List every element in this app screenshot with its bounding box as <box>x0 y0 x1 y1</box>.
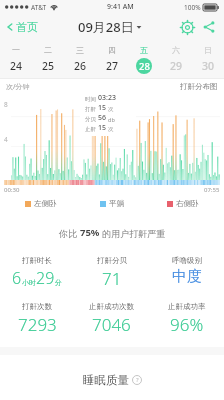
staticText: 时间 <box>85 96 96 103</box>
staticText: 打鼾时长 <box>22 256 52 265</box>
staticText: 二 <box>44 45 52 55</box>
button[interactable]: 右侧卧 <box>165 197 201 210</box>
button[interactable]: 四 <box>96 40 128 78</box>
staticText: 左侧卧 <box>34 199 57 208</box>
staticText: 打鼾分布图 <box>180 82 218 91</box>
staticText: 29 <box>170 59 183 73</box>
staticText: 日 <box>204 45 212 55</box>
staticText: 56 <box>98 113 107 123</box>
button[interactable]: 一 <box>0 40 32 78</box>
staticText: 03:23 <box>98 93 116 103</box>
staticText: 六 <box>172 45 180 55</box>
button[interactable]: 平躺 <box>98 197 126 210</box>
button[interactable]: 左侧卧 <box>23 197 59 210</box>
staticText: 首页 <box>16 20 38 34</box>
staticText: 小时 <box>22 278 36 287</box>
staticText: 28 <box>139 60 150 73</box>
staticText: 8 <box>4 100 8 109</box>
staticText: 96% <box>170 313 204 336</box>
staticText: 止鼾成功次数 <box>89 302 134 311</box>
staticText: 三 <box>76 45 84 55</box>
staticText: 右侧卧 <box>176 199 199 208</box>
staticText: 打鼾 <box>85 106 96 113</box>
staticText: 四 <box>108 45 116 55</box>
staticText: 00:30 <box>4 186 20 194</box>
button[interactable]: 打鼾分贝 <box>74 255 149 291</box>
staticText: 75% <box>80 226 100 239</box>
staticText: 9:41 AM <box>107 2 134 12</box>
button[interactable]: 三 <box>64 40 96 78</box>
staticText: 呼噜级别 <box>172 256 202 265</box>
staticText: 睡眠质量 <box>83 373 129 387</box>
staticText: 次 <box>108 126 114 133</box>
staticText: 你比 <box>59 227 80 239</box>
staticText: 15 <box>98 103 107 113</box>
staticText: 24 <box>10 59 23 73</box>
staticText: 07:55 <box>204 186 220 194</box>
staticText: 止鼾 <box>85 126 96 133</box>
staticText: 中度 <box>172 267 202 286</box>
staticText: AT&T <box>31 3 47 12</box>
staticText: 次/分钟 <box>6 82 30 92</box>
staticText: 打鼾分贝 <box>97 256 127 265</box>
staticText: 止鼾成功率 <box>168 302 206 311</box>
button[interactable]: 首页 <box>0 17 44 37</box>
staticText: 30 <box>202 59 215 73</box>
button[interactable]: 打鼾时长 <box>0 255 74 290</box>
staticText: 一 <box>12 45 20 55</box>
button[interactable]: 打鼾次数 <box>0 301 74 337</box>
staticText: 次 <box>108 106 114 113</box>
staticText: 分贝 <box>85 116 96 123</box>
staticText: 15 <box>98 123 107 133</box>
button[interactable]: 六 <box>160 40 192 78</box>
staticText: 09月28日 <box>78 18 134 36</box>
staticText: 71 <box>102 267 122 290</box>
staticText: 五 <box>140 45 148 55</box>
staticText: 7293 <box>18 313 57 336</box>
button[interactable]: 设置 <box>176 16 198 38</box>
staticText: 平躺 <box>109 199 124 208</box>
staticText: 29 <box>36 267 55 289</box>
staticText: 27 <box>106 59 119 73</box>
staticText: db <box>108 116 115 123</box>
staticText: 打鼾次数 <box>22 302 52 311</box>
button[interactable]: 止鼾成功次数 <box>74 301 149 337</box>
staticText: 分 <box>55 278 62 287</box>
button[interactable]: 分享 <box>198 16 220 38</box>
staticText: 26 <box>74 59 87 73</box>
button[interactable]: 止鼾成功率 <box>149 301 224 337</box>
button[interactable]: 日 <box>192 40 224 78</box>
staticText: 100% <box>184 3 201 12</box>
button[interactable]: 09月28日 <box>74 15 146 39</box>
staticText: 6 <box>12 267 22 289</box>
staticText: 的用户打鼾严重 <box>100 227 166 239</box>
staticText: 25 <box>42 59 55 73</box>
button[interactable]: 五 <box>128 40 160 78</box>
button[interactable]: 呼噜级别 <box>149 255 224 287</box>
staticText: 7046 <box>92 313 131 336</box>
staticText: ? <box>136 376 139 384</box>
button[interactable]: 二 <box>32 40 64 78</box>
button[interactable]: 帮助 <box>132 375 142 385</box>
staticText: 4 <box>4 135 8 144</box>
